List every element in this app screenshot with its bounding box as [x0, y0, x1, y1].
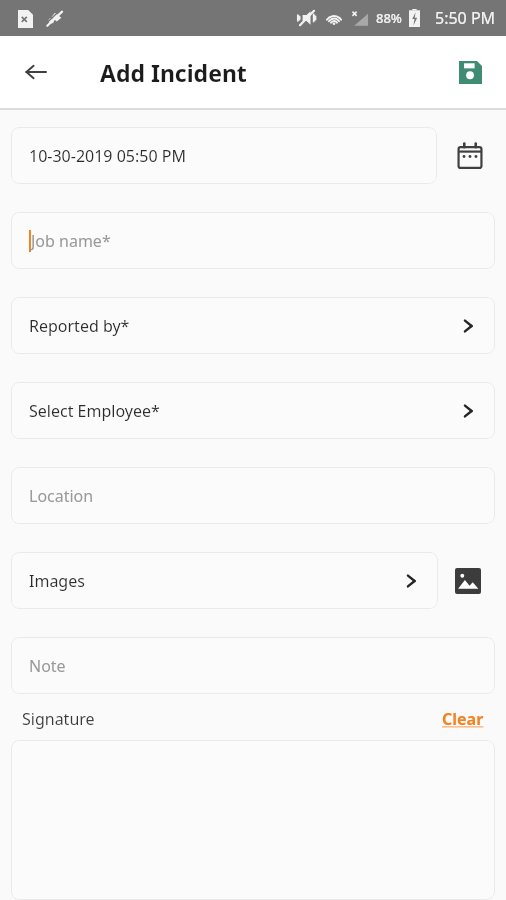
button[interactable]: Back [12, 48, 60, 96]
staticText: Select Employee* [29, 400, 160, 422]
button[interactable]: 10-30-2019 05:50 PM [11, 127, 437, 184]
button[interactable]: Job name* [11, 212, 495, 269]
button[interactable]: Clear [442, 708, 484, 730]
button[interactable]: Reported by* [11, 297, 495, 354]
staticText: Location [29, 485, 94, 507]
button[interactable]: Save [446, 48, 494, 96]
staticText: 10-30-2019 05:50 PM [29, 145, 186, 167]
staticText: 88% [376, 9, 402, 27]
staticText: Add Incident [100, 57, 247, 88]
button[interactable]: Images [11, 552, 438, 609]
staticText: Note [29, 655, 66, 677]
button[interactable]: Note [11, 637, 495, 694]
staticText: Reported by* [29, 315, 130, 337]
button[interactable]: Select Employee* [11, 382, 495, 439]
button[interactable]: Pick date [448, 134, 492, 178]
button[interactable]: Add image [448, 561, 488, 601]
staticText: Signature [22, 708, 95, 730]
staticText: 5:50 PM [435, 7, 496, 29]
staticText: Clear [442, 708, 484, 730]
staticText: Job name* [31, 230, 111, 252]
button[interactable]: Location [11, 467, 495, 524]
staticText: Images [29, 570, 85, 592]
